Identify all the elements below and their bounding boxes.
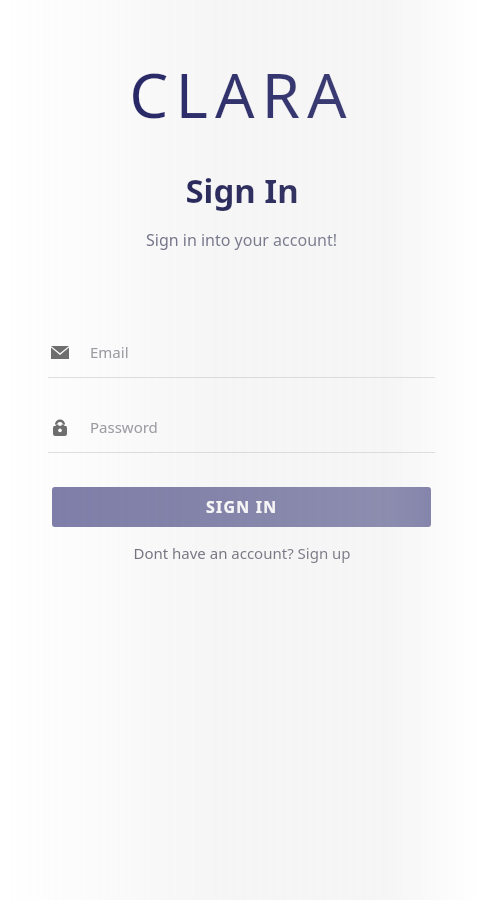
staticText: Dont have an account? Sign up [133,543,351,563]
staticText: Sign In [185,168,299,213]
staticText: Email [90,342,129,362]
button[interactable]: Email [48,335,435,378]
other: Email [48,340,72,364]
button[interactable]: Password [48,410,435,453]
staticText: SIGN IN [206,496,278,518]
staticText: Password [90,417,158,437]
staticText: Sign in into your account! [146,229,337,251]
other: Password [48,415,72,439]
staticText: CLARA [129,52,354,136]
button[interactable]: Dont have an account? Sign up [133,543,351,563]
button[interactable]: SIGN IN [52,487,431,527]
